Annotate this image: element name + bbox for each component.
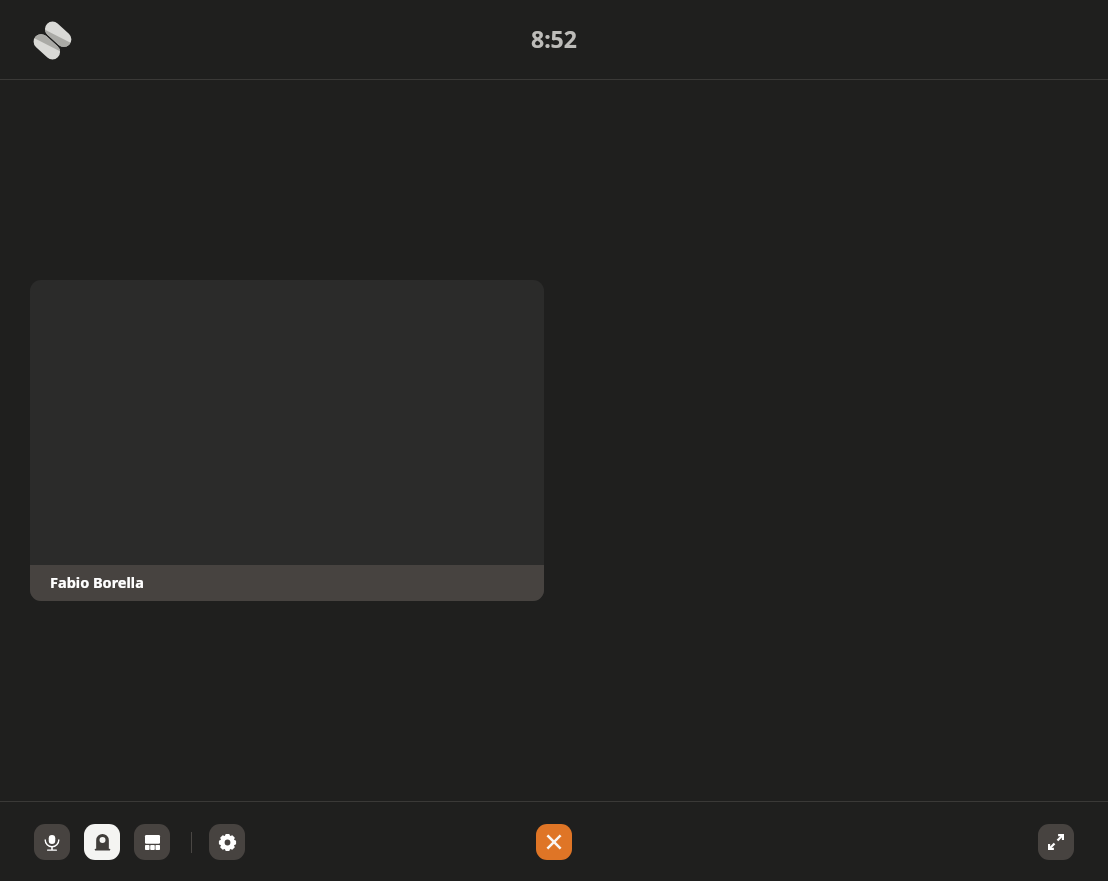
staticText: Fabio Borella [50,572,144,592]
button[interactable]: Toggle fullscreen [1038,824,1074,860]
staticText: 8:52 [531,23,577,54]
button[interactable]: Leave meeting [536,824,572,860]
button[interactable]: Settings [209,824,245,860]
button[interactable]: Camera [84,824,120,860]
button[interactable]: Jitsi Meet home [32,20,73,61]
button[interactable]: Fabio Borella [30,280,544,601]
button[interactable]: Microphone [34,824,70,860]
button[interactable]: Tile view [134,824,170,860]
